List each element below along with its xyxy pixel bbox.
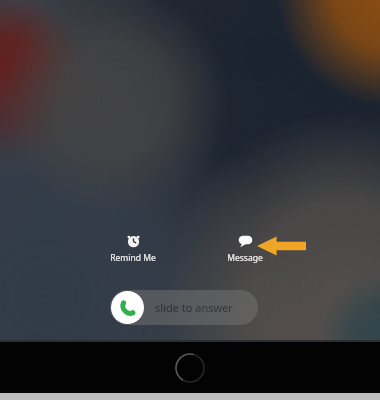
staticText: Remind Me [110,252,156,264]
staticText: Message [227,252,263,264]
button[interactable]: Remind Me [103,230,163,266]
button[interactable]: Message [218,230,272,266]
staticText: slide to answer [155,300,233,315]
button[interactable]: Answer call [111,291,144,324]
button[interactable]: slide to answer [110,290,258,325]
